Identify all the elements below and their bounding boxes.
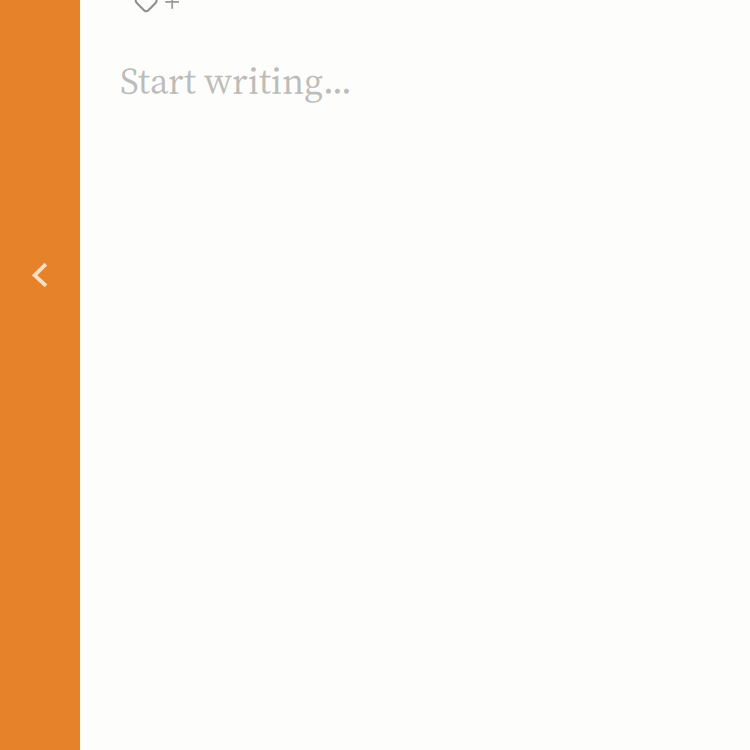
button[interactable]: Back <box>0 0 80 750</box>
staticText: Start writing... <box>120 55 352 106</box>
button[interactable]: Add tag <box>0 0 220 28</box>
